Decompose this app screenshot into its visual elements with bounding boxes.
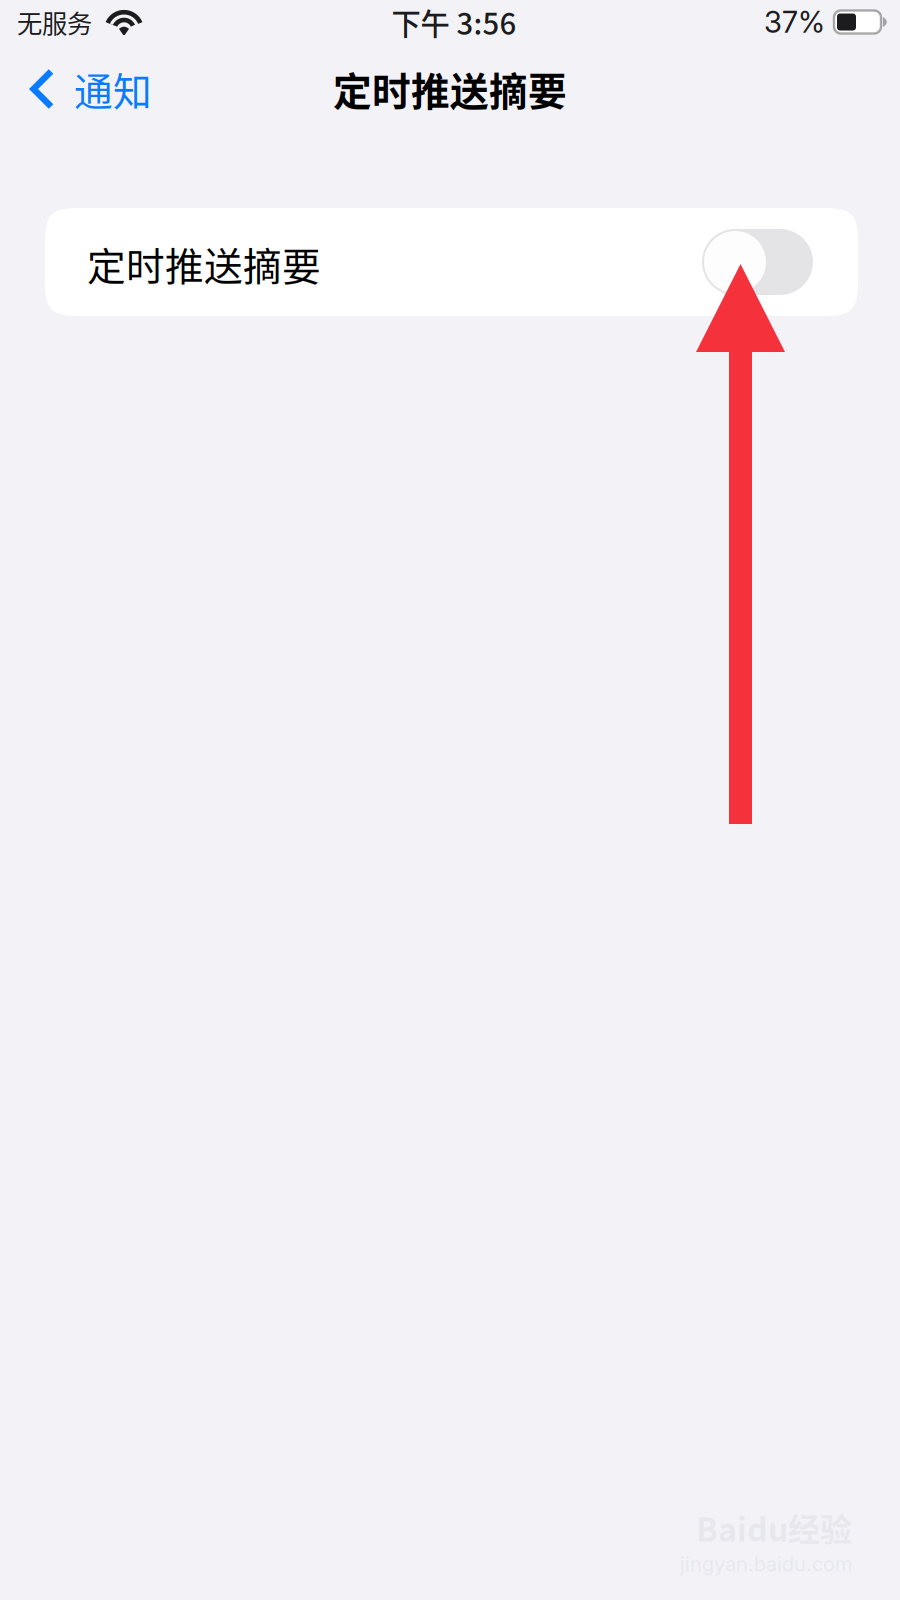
staticText: jingyan.baidu.com xyxy=(680,1552,852,1576)
staticText: Baidu经验 xyxy=(696,1504,852,1551)
staticText: 定时推送摘要 xyxy=(87,236,321,292)
button[interactable]: 定时推送摘要 xyxy=(45,208,858,316)
staticText: 通知 xyxy=(74,61,152,117)
staticText: 无服务 xyxy=(17,4,92,40)
staticText: 37% xyxy=(764,4,825,40)
button[interactable]: 返回通知 xyxy=(0,49,172,129)
staticText: 下午 3:56 xyxy=(391,1,516,43)
staticText: 定时推送摘要 xyxy=(333,61,567,117)
